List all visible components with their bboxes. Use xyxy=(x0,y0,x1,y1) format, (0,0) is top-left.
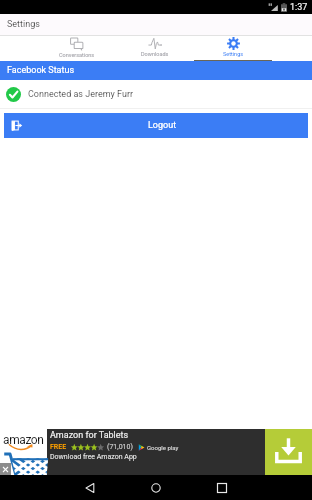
staticText: Amazon for Tablets xyxy=(50,430,129,441)
staticText: Logout xyxy=(148,120,177,131)
button[interactable]: Settings xyxy=(194,36,272,61)
staticText: Connected as Jeremy Furr xyxy=(28,89,134,100)
staticText: (71,010) xyxy=(107,443,133,451)
staticText: Conversations xyxy=(59,52,95,58)
button[interactable]: Home xyxy=(133,475,179,500)
staticText: Google play xyxy=(147,444,179,451)
staticText: Settings xyxy=(7,19,40,30)
button[interactable]: Recents xyxy=(199,475,245,500)
button[interactable]: Close ad xyxy=(0,463,11,475)
staticText: 1:37 xyxy=(290,2,308,13)
staticText: FREE xyxy=(50,443,67,451)
button[interactable]: Connected as Jeremy Furr xyxy=(0,80,312,108)
staticText: Facebook Status xyxy=(7,65,75,76)
staticText: Download free Amazon App xyxy=(50,453,137,461)
button[interactable]: Conversations xyxy=(38,36,116,61)
button[interactable]: Install xyxy=(265,429,312,475)
button[interactable]: Downloads xyxy=(116,36,194,61)
button[interactable]: Logout xyxy=(4,113,308,138)
button[interactable]: Back xyxy=(67,475,113,500)
staticText: Downloads xyxy=(141,51,169,57)
staticText: Settings xyxy=(223,51,244,57)
staticText: amazon xyxy=(3,433,44,447)
